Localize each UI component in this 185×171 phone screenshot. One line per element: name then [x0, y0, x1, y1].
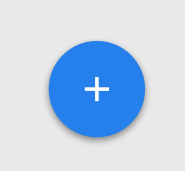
- button[interactable]: Add: [49, 41, 145, 137]
